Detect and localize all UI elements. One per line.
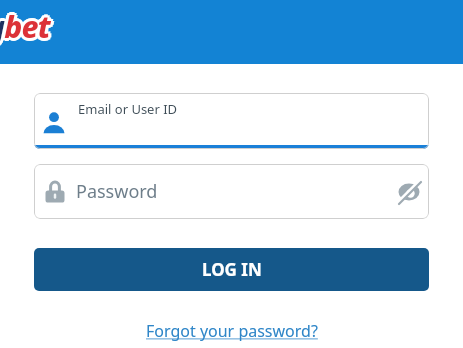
- button[interactable]: LOG IN: [34, 248, 429, 291]
- staticText: Password: [76, 179, 158, 204]
- staticText: gbet: [0, 3, 50, 44]
- staticText: gbet: [0, 6, 53, 47]
- staticText: Email or User ID: [78, 100, 178, 118]
- staticText: gbet: [0, 9, 50, 50]
- staticText: Forgot your password?: [146, 320, 318, 342]
- button[interactable]: Forgot your password?: [146, 320, 318, 342]
- staticText: gbet: [0, 6, 47, 47]
- button[interactable]: [397, 180, 421, 204]
- staticText: gbet: [0, 4, 48, 45]
- staticText: gbet: [0, 8, 52, 49]
- button[interactable]: Email or User ID: [34, 93, 429, 149]
- staticText: gbet: [0, 8, 48, 49]
- staticText: gbet: [0, 6, 50, 47]
- button[interactable]: Password: [34, 164, 429, 219]
- staticText: gbet: [0, 4, 52, 45]
- staticText: LOG IN: [202, 258, 262, 281]
